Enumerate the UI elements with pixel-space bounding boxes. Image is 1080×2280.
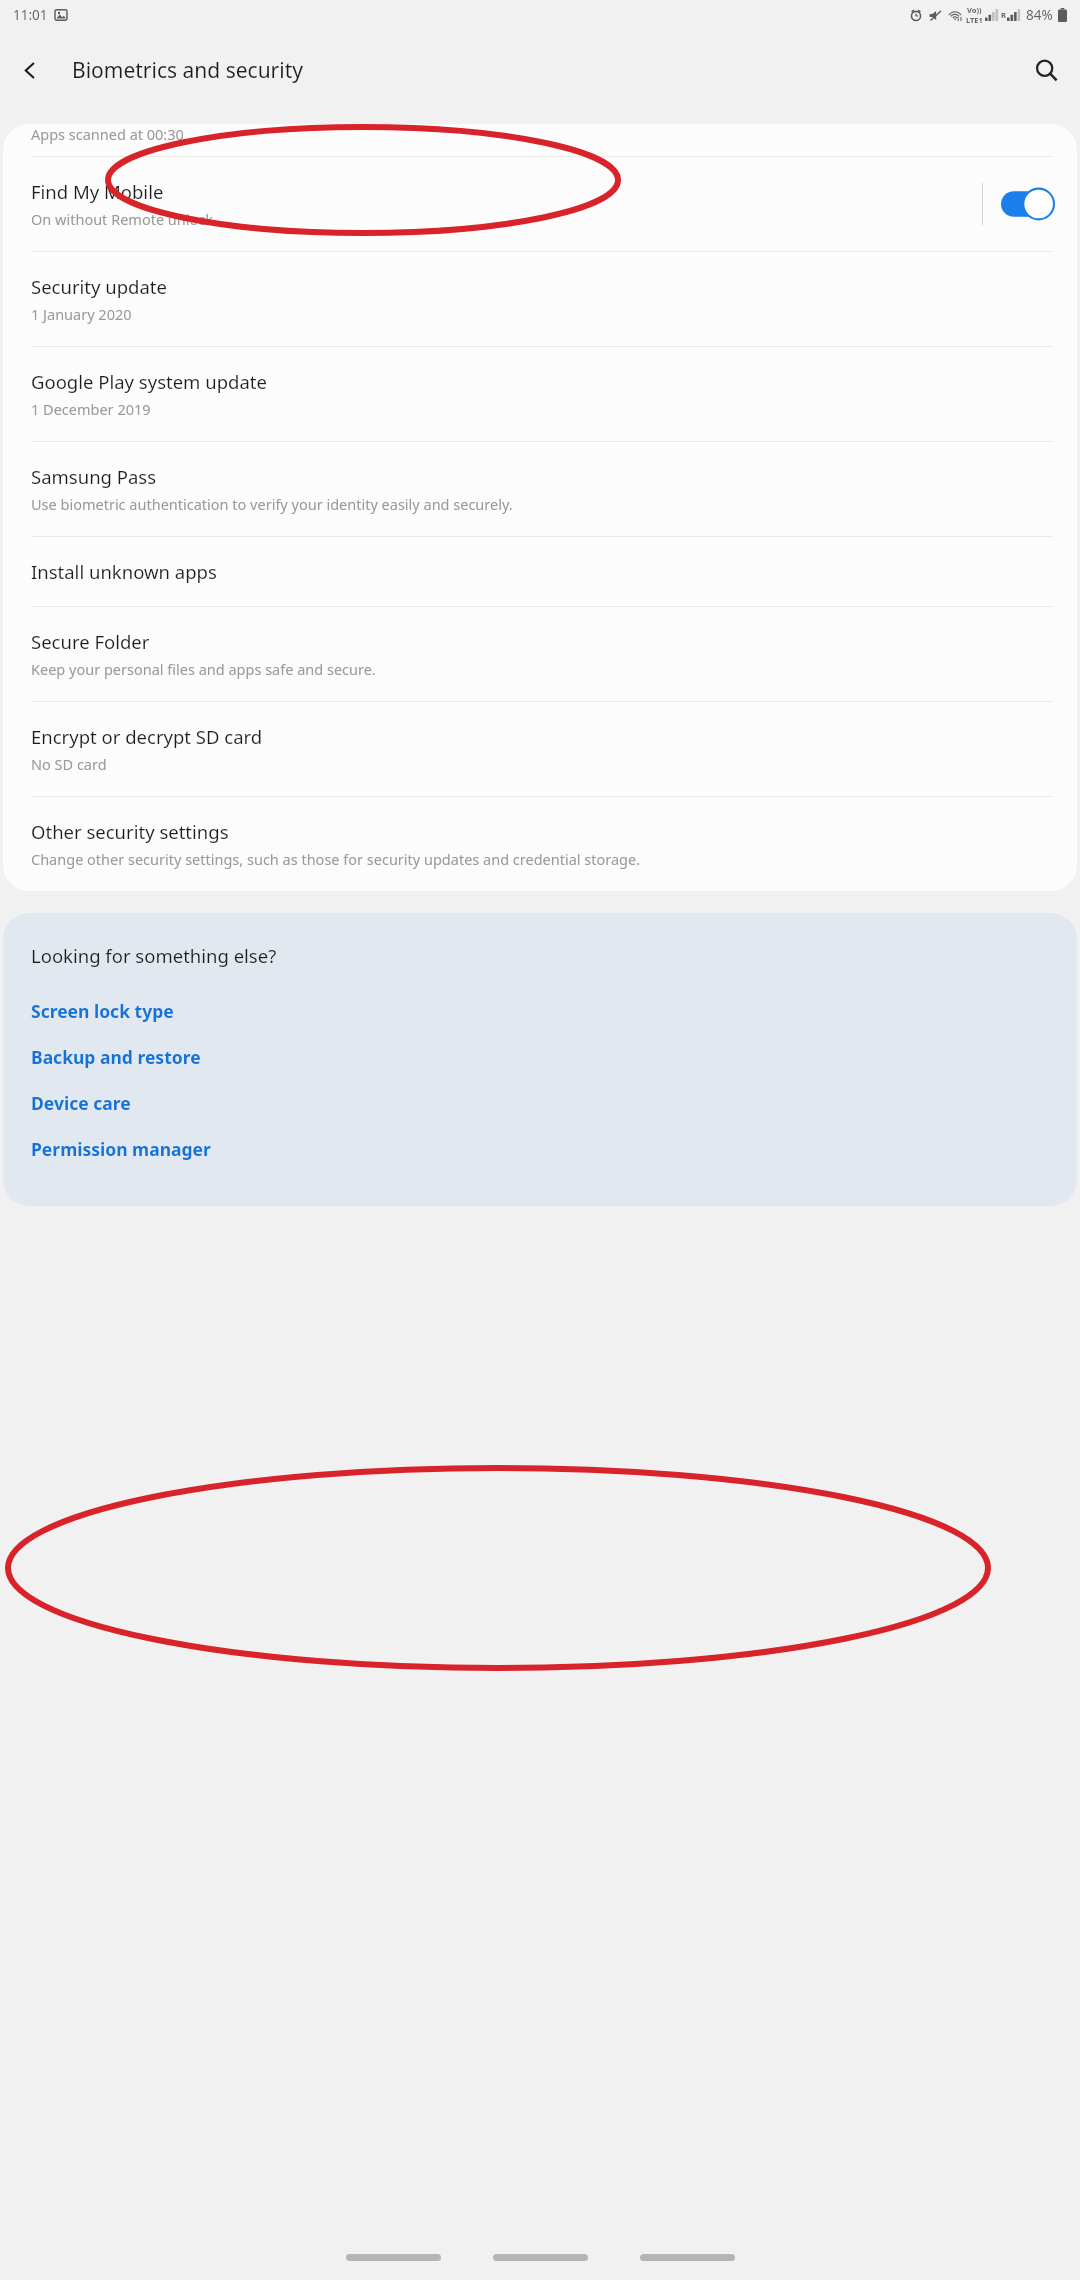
button[interactable]: Find My Mobile [3,157,1077,251]
button[interactable]: Other security settings [3,797,1077,891]
staticText: Device care [31,1091,131,1115]
staticText: Backup and restore [31,1045,201,1069]
button[interactable]: Install unknown apps [3,537,1077,606]
staticText: 84% [1026,6,1053,24]
staticText: Google Play system update [31,369,267,394]
staticText: Keep your personal files and apps safe a… [31,659,376,679]
button[interactable]: Back [640,2246,735,2268]
staticText: Find My Mobile [31,179,164,204]
staticText: Looking for something else? [31,943,277,968]
button[interactable]: Search [1022,46,1070,94]
staticText: 1 December 2019 [31,399,151,419]
button[interactable]: Google Play system update [3,347,1077,441]
button[interactable]: Screen lock type [31,988,1053,1034]
staticText: Use biometric authentication to verify y… [31,494,513,514]
staticText: Vo)) [967,5,982,15]
button[interactable]: Security update [3,252,1077,346]
staticText: Screen lock type [31,999,174,1023]
button[interactable]: Samsung Pass [3,442,1077,536]
staticText: Install unknown apps [31,559,217,584]
button[interactable]: Apps scanned at 00:30 [3,124,1077,156]
staticText: LTE1 [966,15,983,25]
staticText: Biometrics and security [72,56,303,85]
staticText: Encrypt or decrypt SD card [31,724,263,749]
button[interactable]: Home [493,2246,588,2268]
staticText: Samsung Pass [31,464,157,489]
staticText: Secure Folder [31,629,150,654]
button[interactable]: Backup and restore [31,1034,1053,1080]
staticText: On without Remote unlock [31,209,213,229]
staticText: Security update [31,274,167,299]
staticText: 11:01 [13,6,48,24]
button[interactable]: Find My Mobile toggle [1001,188,1055,220]
button[interactable]: Encrypt or decrypt SD card [3,702,1077,796]
staticText: 1 January 2020 [31,304,132,324]
staticText: Change other security settings, such as … [31,849,641,869]
staticText: R [1001,10,1006,20]
button[interactable]: Back [8,48,52,92]
staticText: Apps scanned at 00:30 [31,124,184,144]
button[interactable]: Permission manager [31,1126,1053,1172]
button[interactable]: Secure Folder [3,607,1077,701]
button[interactable]: Recents [346,2246,441,2268]
staticText: Permission manager [31,1137,211,1161]
button[interactable]: Device care [31,1080,1053,1126]
staticText: Other security settings [31,819,229,844]
staticText: No SD card [31,754,107,774]
